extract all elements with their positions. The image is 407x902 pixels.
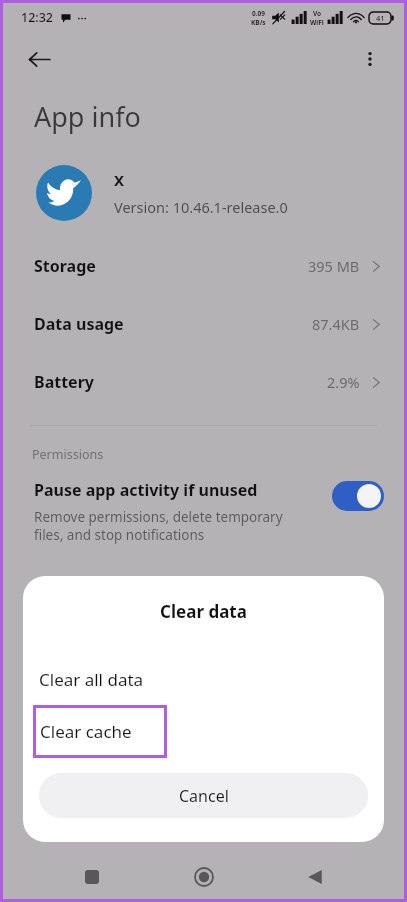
staticText: 395 MB bbox=[308, 256, 360, 276]
staticText: Clear all data bbox=[39, 668, 144, 691]
button[interactable]: More options bbox=[350, 39, 390, 79]
staticText: KB/s bbox=[251, 18, 266, 27]
staticText: Version: 10.46.1-release.0 bbox=[114, 197, 288, 217]
button[interactable]: Data usage bbox=[3, 295, 404, 353]
button[interactable]: Clear all data bbox=[23, 655, 384, 703]
button[interactable]: Back bbox=[292, 854, 338, 899]
staticText: Permissions bbox=[32, 446, 104, 463]
button[interactable]: Pause app activity if unused bbox=[3, 479, 404, 544]
staticText: Pause app activity if unused bbox=[34, 479, 258, 501]
staticText: Vo bbox=[313, 9, 322, 18]
button[interactable]: Battery bbox=[3, 353, 404, 411]
staticText: Remove permissions, delete temporary bbox=[34, 508, 283, 526]
staticText: WiFi bbox=[310, 18, 324, 27]
button[interactable]: Clear cache bbox=[33, 705, 167, 758]
button[interactable]: Back bbox=[17, 37, 61, 81]
staticText: Data usage bbox=[34, 313, 124, 335]
staticText: 2.9% bbox=[327, 372, 360, 392]
staticText: Battery bbox=[34, 371, 94, 393]
button[interactable]: Storage bbox=[3, 237, 404, 295]
staticText: 0.09 bbox=[252, 9, 265, 18]
staticText: 87.4KB bbox=[312, 314, 360, 334]
staticText: files, and stop notifications bbox=[34, 526, 205, 544]
button[interactable]: Cancel bbox=[39, 773, 368, 818]
staticText: X bbox=[114, 170, 125, 190]
staticText: Cancel bbox=[179, 785, 229, 807]
button[interactable] bbox=[332, 481, 384, 511]
staticText: Clear cache bbox=[40, 720, 132, 743]
staticText: Clear data bbox=[23, 600, 384, 623]
staticText: 41 bbox=[376, 13, 385, 23]
staticText: 12:32 bbox=[21, 9, 54, 26]
staticText: Storage bbox=[34, 255, 96, 277]
button[interactable]: Home bbox=[181, 854, 227, 899]
staticText: App info bbox=[34, 98, 141, 135]
button[interactable]: Recent apps bbox=[69, 854, 115, 899]
